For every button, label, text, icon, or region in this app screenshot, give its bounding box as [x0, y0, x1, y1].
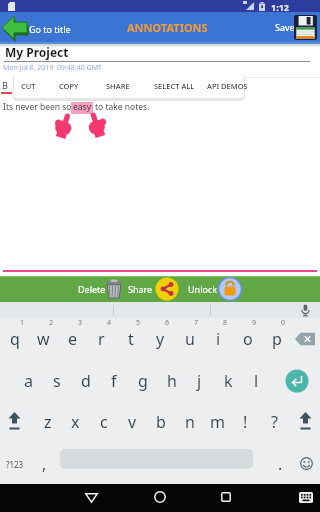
button[interactable]: SELECT ALL: [154, 74, 196, 98]
staticText: API DEMOS: [207, 81, 248, 91]
staticText: i: [216, 328, 221, 350]
staticText: ANNOTATIONS: [127, 20, 208, 35]
button[interactable]: [293, 443, 320, 485]
button[interactable]: p: [262, 318, 291, 360]
staticText: r: [98, 328, 105, 350]
staticText: l: [254, 370, 259, 392]
button[interactable]: e: [58, 318, 87, 360]
staticText: f: [111, 370, 117, 392]
staticText: SHARE: [106, 81, 130, 91]
staticText: d: [81, 370, 91, 392]
button[interactable]: Go to title: [0, 14, 78, 42]
staticText: COPY: [59, 81, 79, 91]
staticText: c: [100, 411, 108, 433]
button[interactable]: Share: [124, 276, 180, 302]
staticText: !: [243, 411, 248, 433]
button[interactable]: Save: [266, 12, 320, 44]
button[interactable]: o: [233, 318, 262, 360]
staticText: easy: [73, 101, 91, 113]
button[interactable]: l: [242, 360, 271, 402]
staticText: j: [197, 370, 202, 392]
button[interactable]: w: [29, 318, 58, 360]
button[interactable]: n: [175, 401, 204, 443]
button[interactable]: t: [116, 318, 145, 360]
staticText: Delete: [78, 283, 106, 295]
button[interactable]: r: [87, 318, 116, 360]
staticText: 6: [165, 318, 170, 328]
button[interactable]: m: [203, 401, 232, 443]
button[interactable]: [140, 484, 180, 512]
button[interactable]: [295, 488, 317, 506]
button[interactable]: [71, 484, 111, 512]
staticText: to take notes.: [95, 101, 150, 113]
button[interactable]: ?123: [0, 443, 30, 485]
button[interactable]: a: [14, 360, 43, 402]
button[interactable]: [2, 401, 27, 443]
staticText: 4: [107, 318, 112, 328]
staticText: Save: [275, 21, 295, 33]
button[interactable]: q: [0, 318, 29, 360]
button[interactable]: i: [204, 318, 233, 360]
staticText: a: [24, 370, 33, 392]
button[interactable]: u: [175, 318, 204, 360]
staticText: g: [138, 370, 148, 392]
staticText: CUT: [21, 81, 36, 91]
staticText: ?: [271, 411, 278, 433]
staticText: Mon Jul 8, 2019 09:48:40 GMT: [3, 63, 102, 73]
staticText: m: [210, 411, 225, 433]
staticText: y: [156, 328, 165, 350]
staticText: My Project: [5, 44, 69, 60]
staticText: Unlock: [188, 283, 218, 295]
button[interactable]: k: [214, 360, 243, 402]
button[interactable]: c: [89, 401, 118, 443]
staticText: q: [10, 328, 20, 350]
button[interactable]: b: [146, 401, 175, 443]
button[interactable]: [293, 401, 318, 443]
button[interactable]: [206, 484, 246, 512]
staticText: 8: [223, 318, 228, 328]
staticText: 5: [136, 318, 141, 328]
button[interactable]: CUT: [21, 74, 63, 98]
button[interactable]: f: [99, 360, 128, 402]
staticText: 1: [20, 318, 25, 328]
staticText: p: [272, 328, 282, 350]
button[interactable]: [291, 318, 320, 360]
staticText: w: [37, 328, 50, 350]
button[interactable]: Unlock: [185, 276, 245, 302]
button[interactable]: !: [231, 401, 260, 443]
button[interactable]: y: [146, 318, 175, 360]
button[interactable]: ,: [30, 443, 59, 485]
button[interactable]: g: [128, 360, 157, 402]
staticText: h: [167, 370, 177, 392]
button[interactable]: .: [266, 443, 295, 485]
staticText: Share: [128, 283, 153, 295]
staticText: SELECT ALL: [154, 81, 195, 91]
button[interactable]: API DEMOS: [207, 74, 249, 98]
button[interactable]: h: [157, 360, 186, 402]
button[interactable]: d: [71, 360, 100, 402]
button[interactable]: j: [185, 360, 214, 402]
staticText: ?123: [6, 459, 24, 470]
staticText: e: [68, 328, 78, 350]
button[interactable]: s: [42, 360, 71, 402]
button[interactable]: x: [61, 401, 90, 443]
staticText: z: [44, 411, 52, 433]
staticText: 0: [281, 318, 286, 328]
button[interactable]: [282, 360, 320, 402]
button[interactable]: v: [118, 401, 147, 443]
staticText: ,: [42, 453, 47, 475]
staticText: .: [278, 453, 283, 475]
staticText: k: [224, 370, 233, 392]
staticText: u: [185, 328, 195, 350]
staticText: x: [71, 411, 80, 433]
staticText: n: [185, 411, 195, 433]
button[interactable]: Delete: [70, 276, 126, 302]
button[interactable]: z: [33, 401, 62, 443]
staticText: b: [156, 411, 166, 433]
staticText: 7: [194, 318, 199, 328]
button[interactable]: SHARE: [106, 74, 148, 98]
button[interactable]: ?: [260, 401, 289, 443]
button[interactable]: COPY: [59, 74, 101, 98]
staticText: 2: [49, 318, 54, 328]
